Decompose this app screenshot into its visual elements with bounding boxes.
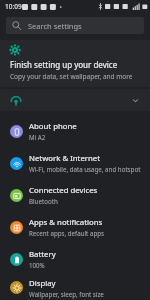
staticText: 100% — [29, 261, 45, 269]
other: Network setup — [10, 94, 22, 106]
staticText: Bluetooth — [29, 197, 58, 205]
staticText: Display — [29, 278, 56, 289]
staticText: About phone — [29, 121, 77, 132]
button[interactable]: Search settings — [6, 17, 144, 34]
button[interactable]: Battery — [0, 243, 150, 275]
staticText: Recent apps, default apps — [29, 229, 104, 237]
staticText: Finish setting up your device — [10, 59, 118, 70]
other: Expand — [131, 96, 140, 105]
staticText: Copy your data, set wallpaper, and more — [10, 72, 133, 81]
button[interactable]: Display — [0, 275, 150, 300]
staticText: Wi-Fi, mobile, data usage, and hotspot — [29, 165, 141, 173]
button[interactable]: Setup — [0, 40, 150, 87]
staticText: Search settings — [28, 21, 82, 31]
button[interactable]: About phone — [0, 115, 150, 147]
staticText: Apps & notifications — [29, 217, 103, 228]
button[interactable]: Network & Internet — [0, 147, 150, 179]
staticText: Mi A2 — [29, 133, 46, 141]
button[interactable]: Connected devices — [0, 179, 150, 211]
other: Setup — [10, 45, 20, 55]
staticText: 10:09 — [5, 2, 22, 11]
button[interactable]: Apps & notifications — [0, 211, 150, 243]
staticText: Wallpaper, sleep, font size — [29, 290, 104, 298]
button[interactable]: Network setup — [0, 89, 150, 111]
staticText: Battery — [29, 249, 56, 260]
staticText: Connected devices — [29, 185, 98, 196]
staticText: Network & Internet — [29, 153, 101, 164]
